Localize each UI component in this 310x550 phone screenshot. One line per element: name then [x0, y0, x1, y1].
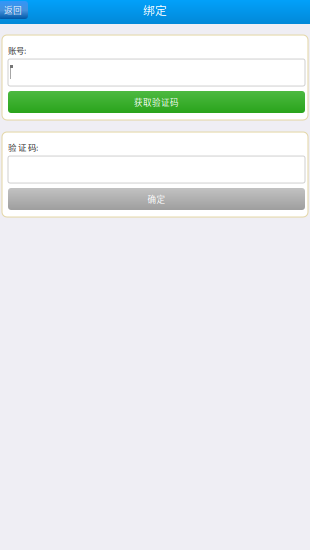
- staticText: 绑定: [143, 1, 167, 18]
- staticText: 返回: [4, 4, 22, 16]
- button[interactable]: 确定: [8, 188, 305, 210]
- staticText: 账号:: [8, 44, 26, 56]
- button[interactable]: 返回: [0, 1, 28, 19]
- staticText: 获取验证码: [134, 96, 179, 108]
- staticText: 确定: [147, 193, 165, 205]
- staticText: 验 证 码:: [8, 141, 38, 153]
- button[interactable]: 获取验证码: [8, 91, 305, 113]
